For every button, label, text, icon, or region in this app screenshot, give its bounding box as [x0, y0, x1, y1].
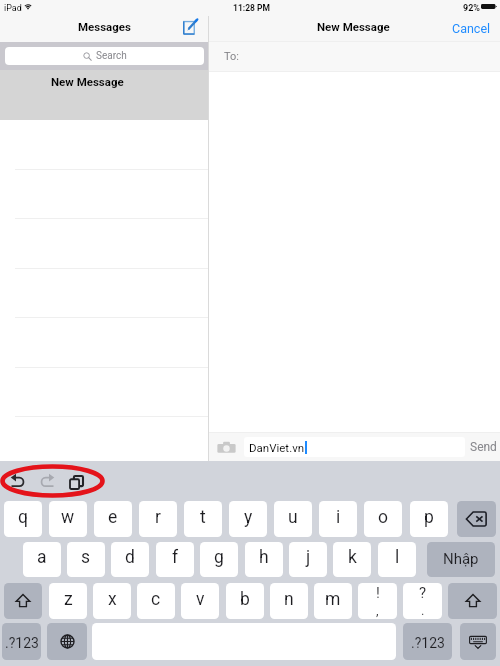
- staticText: iPad: [4, 3, 22, 14]
- staticText: .?123: [411, 635, 445, 651]
- button[interactable]: New Message: [0, 70, 209, 120]
- button[interactable]: b: [226, 583, 264, 619]
- staticText: s: [81, 547, 91, 568]
- staticText: z: [64, 589, 73, 610]
- button[interactable]: h: [245, 542, 283, 577]
- button[interactable]: e: [94, 501, 132, 537]
- button[interactable]: DanViet.vn: [244, 437, 465, 457]
- staticText: c: [151, 589, 161, 610]
- button[interactable]: Shift: [4, 583, 42, 619]
- staticText: Send: [470, 440, 497, 454]
- staticText: o: [378, 507, 388, 528]
- staticText: u: [288, 507, 298, 528]
- staticText: New Message: [51, 75, 124, 88]
- button[interactable]: Shift: [448, 583, 497, 619]
- button[interactable]: k: [333, 542, 371, 577]
- button[interactable]: Paste: [70, 476, 83, 489]
- staticText: q: [18, 507, 28, 528]
- staticText: Nhập: [443, 550, 479, 568]
- staticText: g: [214, 547, 224, 568]
- button[interactable]: Search: [5, 47, 204, 65]
- staticText: b: [240, 589, 250, 610]
- staticText: l: [395, 547, 400, 568]
- button[interactable]: m: [314, 583, 352, 619]
- button[interactable]: Cancel: [447, 18, 497, 40]
- staticText: i: [336, 507, 341, 528]
- staticText: New Message: [317, 20, 390, 33]
- staticText: w: [61, 507, 75, 528]
- staticText: y: [244, 507, 253, 528]
- button[interactable]: g: [200, 542, 238, 577]
- button[interactable]: .?123: [403, 623, 452, 660]
- staticText: .?123: [5, 635, 39, 651]
- staticText: .: [421, 603, 425, 618]
- staticText: p: [424, 507, 434, 528]
- staticText: m: [325, 589, 341, 610]
- button[interactable]: v: [181, 583, 219, 619]
- staticText: Cancel: [452, 21, 491, 36]
- button[interactable]: Backspace: [457, 501, 496, 537]
- button[interactable]: p: [410, 501, 448, 537]
- button[interactable]: r: [139, 501, 177, 537]
- button[interactable]: Camera: [217, 441, 236, 455]
- button[interactable]: y: [229, 501, 267, 537]
- button[interactable]: u: [274, 501, 312, 537]
- button[interactable]: f: [156, 542, 194, 577]
- button[interactable]: .?123: [2, 623, 41, 660]
- button[interactable]: d: [111, 542, 149, 577]
- staticText: t: [200, 507, 206, 528]
- staticText: ,: [376, 603, 379, 618]
- staticText: 11:28 PM: [233, 3, 270, 13]
- button[interactable]: x: [93, 583, 131, 619]
- staticText: h: [259, 547, 269, 568]
- staticText: n: [284, 589, 294, 610]
- button[interactable]: ?: [403, 583, 442, 619]
- staticText: To:: [224, 50, 239, 63]
- staticText: Messages: [78, 20, 131, 33]
- button[interactable]: t: [184, 501, 222, 537]
- button[interactable]: Nhập: [427, 542, 495, 577]
- staticText: !: [376, 584, 380, 602]
- staticText: v: [196, 589, 205, 610]
- button[interactable]: c: [137, 583, 175, 619]
- staticText: j: [306, 547, 311, 568]
- button[interactable]: i: [319, 501, 357, 537]
- button[interactable]: a: [23, 542, 61, 577]
- staticText: DanViet.vn: [249, 441, 305, 454]
- staticText: r: [155, 507, 161, 528]
- button[interactable]: w: [49, 501, 87, 537]
- button[interactable]: o: [364, 501, 402, 537]
- button[interactable]: s: [67, 542, 105, 577]
- button[interactable]: n: [270, 583, 308, 619]
- button[interactable]: To:: [209, 42, 500, 71]
- button[interactable]: Send: [468, 437, 498, 457]
- staticText: a: [37, 547, 47, 568]
- staticText: 92%: [463, 3, 480, 14]
- staticText: f: [172, 547, 179, 568]
- button[interactable]: Redo: [40, 475, 55, 488]
- button[interactable]: z: [49, 583, 87, 619]
- button[interactable]: Hide keyboard: [460, 623, 496, 660]
- button[interactable]: j: [289, 542, 327, 577]
- staticText: k: [348, 547, 357, 568]
- button[interactable]: Undo: [10, 475, 25, 488]
- staticText: Search: [96, 50, 127, 62]
- button[interactable]: Compose new message: [183, 19, 198, 35]
- staticText: d: [125, 547, 135, 568]
- button[interactable]: l: [378, 542, 416, 577]
- staticText: ?: [419, 584, 427, 602]
- button[interactable]: !: [358, 583, 397, 619]
- staticText: e: [108, 507, 118, 528]
- staticText: x: [108, 589, 117, 610]
- button[interactable]: q: [4, 501, 42, 537]
- button[interactable]: Switch keyboard: [47, 623, 87, 660]
